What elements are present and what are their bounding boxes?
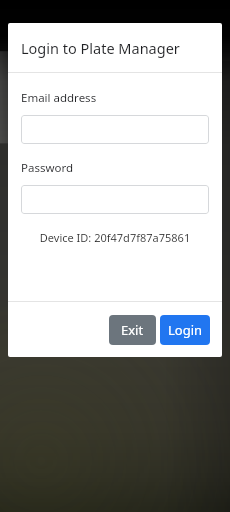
staticText: Login: [168, 321, 203, 339]
button[interactable]: Text input: [21, 185, 209, 214]
staticText: Exit: [121, 321, 144, 339]
staticText: Device ID: 20f47d7f87a75861: [21, 230, 209, 245]
button[interactable]: Login: [160, 315, 210, 345]
staticText: Password: [21, 160, 74, 176]
staticText: Login to Plate Manager: [21, 38, 180, 58]
staticText: Email address: [21, 90, 97, 106]
button[interactable]: Exit: [109, 315, 156, 345]
button[interactable]: Text input: [21, 115, 209, 144]
